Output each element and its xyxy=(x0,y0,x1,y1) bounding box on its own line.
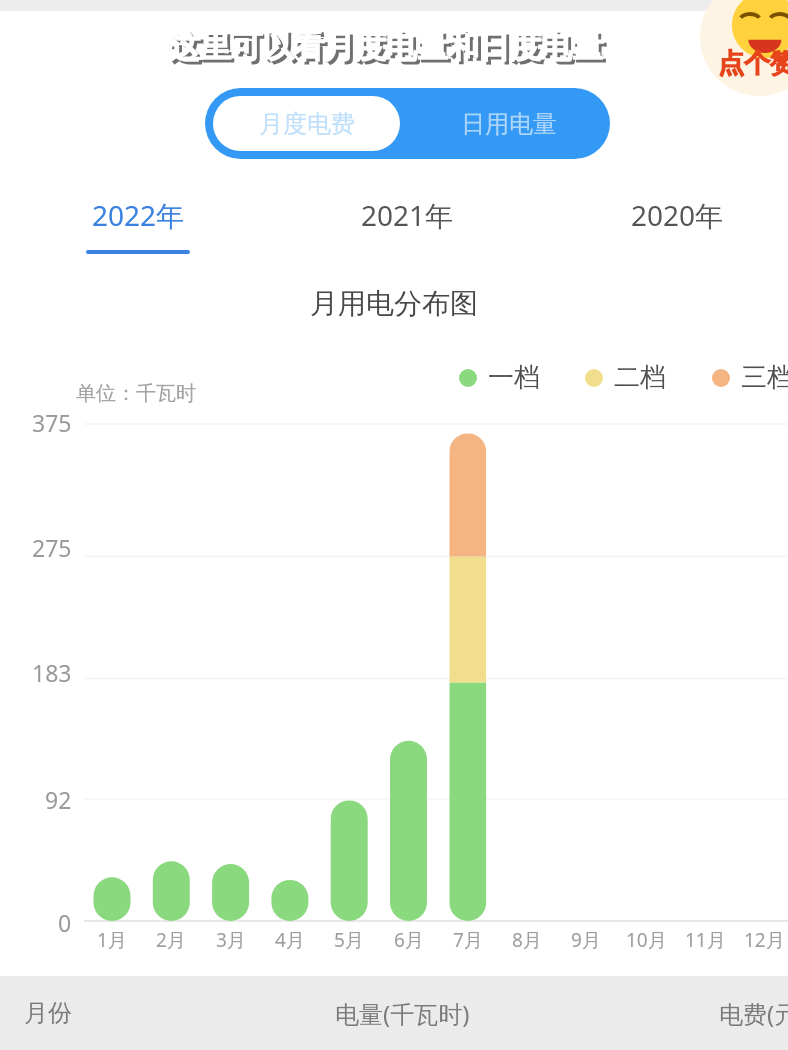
staticText: 10月 xyxy=(626,927,667,953)
button[interactable]: 2022年 xyxy=(86,196,190,254)
staticText: 月份 xyxy=(24,998,72,1028)
staticText: 5月 xyxy=(334,927,364,953)
staticText: 一档 xyxy=(488,361,540,394)
button[interactable]: 三档 xyxy=(712,361,788,394)
button[interactable]: 日用电量 xyxy=(408,88,610,159)
button[interactable]: 2021年 xyxy=(355,196,459,250)
staticText: 2021年 xyxy=(361,196,454,234)
staticText: 2020年 xyxy=(631,196,724,234)
staticText: 日用电量 xyxy=(461,109,557,139)
staticText: 1月 xyxy=(97,927,127,953)
staticText: 6月 xyxy=(394,927,424,953)
staticText: 183 xyxy=(32,657,72,688)
staticText: 9月 xyxy=(571,927,601,953)
staticText: 二档 xyxy=(614,361,666,394)
staticText: 2022年 xyxy=(92,196,185,234)
staticText: 8月 xyxy=(512,927,542,953)
staticText: 电量(千瓦时) xyxy=(335,997,470,1030)
staticText: 点个赞 xyxy=(718,47,788,80)
staticText: 11月 xyxy=(685,927,726,953)
staticText: 这里可以看月度电量和日度电量 xyxy=(169,27,603,66)
staticText: 三档 xyxy=(741,361,788,394)
staticText: 电费(元) xyxy=(719,997,788,1030)
staticText: 12月 xyxy=(744,927,785,953)
button[interactable]: 二档 xyxy=(585,361,666,394)
staticText: 275 xyxy=(32,532,72,563)
staticText: 月用电分布图 xyxy=(310,286,478,321)
staticText: 375 xyxy=(32,407,72,438)
button[interactable]: 月度电费 xyxy=(213,96,400,151)
staticText: 4月 xyxy=(275,927,305,953)
staticText: 单位：千瓦时 xyxy=(76,381,196,406)
staticText: 月度电费 xyxy=(259,109,355,139)
staticText: 7月 xyxy=(453,927,483,953)
button[interactable]: 点个赞 xyxy=(700,0,788,96)
button[interactable]: 2020年 xyxy=(625,196,729,250)
staticText: 92 xyxy=(45,784,72,815)
button[interactable]: 一档 xyxy=(459,361,540,394)
staticText: 2月 xyxy=(156,927,186,953)
staticText: 0 xyxy=(58,907,72,938)
staticText: 3月 xyxy=(216,927,246,953)
staticText: 这里可以看月度电量和日度电量 xyxy=(172,30,606,69)
